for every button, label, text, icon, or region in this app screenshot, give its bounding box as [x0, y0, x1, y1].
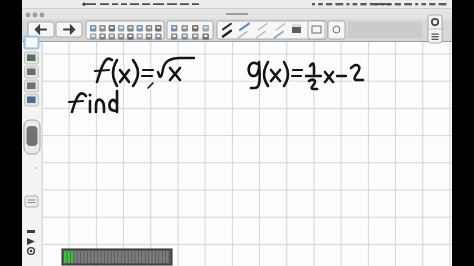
- button[interactable]: Links: [25, 94, 41, 108]
- button[interactable]: Stop: [25, 252, 41, 264]
- button[interactable]: Pen and highlighter tools: [242, 20, 352, 40]
- button[interactable]: Minimize window: [34, 11, 43, 20]
- button[interactable]: Audio level meter: [64, 249, 174, 266]
- button[interactable]: Attachments: [25, 80, 41, 94]
- button[interactable]: More options: [428, 30, 444, 44]
- button[interactable]: Close window: [24, 11, 33, 20]
- button[interactable]: Handwriting canvas: [44, 42, 444, 266]
- button[interactable]: Zoom window: [44, 11, 53, 20]
- button[interactable]: Page thumbnail: [25, 38, 41, 52]
- button[interactable]: Insert tools: [177, 20, 237, 40]
- button[interactable]: Record: [25, 228, 41, 240]
- button[interactable]: Edit tools: [92, 20, 172, 40]
- button[interactable]: Forward: [60, 22, 86, 38]
- button[interactable]: Notes: [25, 196, 41, 210]
- button[interactable]: Audio clips: [25, 66, 41, 80]
- button[interactable]: Eraser: [24, 120, 42, 154]
- button[interactable]: Settings: [428, 16, 444, 30]
- button[interactable]: Back: [30, 22, 56, 38]
- button[interactable]: Image library: [25, 52, 41, 66]
- button[interactable]: Play: [25, 240, 41, 252]
